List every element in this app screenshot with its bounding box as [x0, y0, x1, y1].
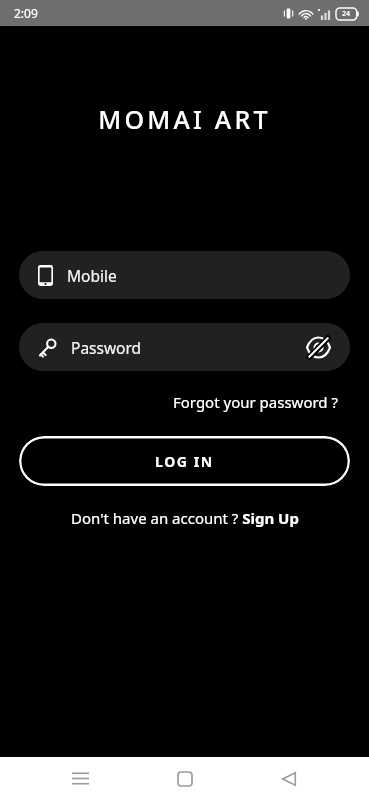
button[interactable]: Back [265, 757, 313, 800]
staticText: LOG IN [155, 452, 214, 471]
button[interactable]: Password [19, 323, 350, 371]
staticText: MOMAI ART [0, 102, 369, 136]
staticText: Password [71, 337, 142, 358]
button[interactable]: Forgot your password ? [172, 392, 369, 412]
button[interactable]: Mobile [19, 251, 350, 299]
button[interactable]: Don't have an account ? Sign Up [65, 502, 305, 534]
button[interactable]: Recent apps [56, 757, 104, 800]
staticText: Mobile [67, 265, 117, 286]
button[interactable]: LOG IN [19, 436, 350, 486]
staticText: 2:09 [14, 5, 38, 21]
button[interactable]: Show password [302, 331, 334, 363]
button[interactable]: Home [161, 757, 209, 800]
staticText: 24 [342, 9, 351, 19]
